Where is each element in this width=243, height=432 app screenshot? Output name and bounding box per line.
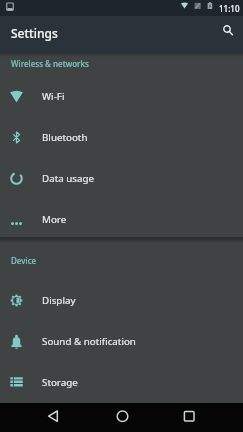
staticText: Wireless & networks [11,58,89,69]
staticText: Device [11,255,37,266]
staticText: Display [42,294,76,307]
staticText: Sound & notification [42,335,136,348]
staticText: More [42,213,67,226]
button[interactable]: Display [0,280,243,321]
staticText: 11:10 [219,3,240,14]
button[interactable] [0,403,81,432]
button[interactable]: Wi-Fi [0,76,243,117]
staticText: Wi-Fi [42,90,65,103]
button[interactable]: More [0,199,243,240]
button[interactable] [162,403,243,432]
staticText: Bluetooth [42,131,88,144]
staticText: Data usage [42,172,95,185]
button[interactable] [81,403,162,432]
button[interactable]: Data usage [0,158,243,199]
button[interactable]: Sound & notification [0,321,243,362]
button[interactable]: Storage [0,362,243,403]
staticText: Storage [42,376,78,389]
staticText: Settings [11,25,58,41]
button[interactable] [216,20,238,42]
button[interactable]: Bluetooth [0,117,243,158]
